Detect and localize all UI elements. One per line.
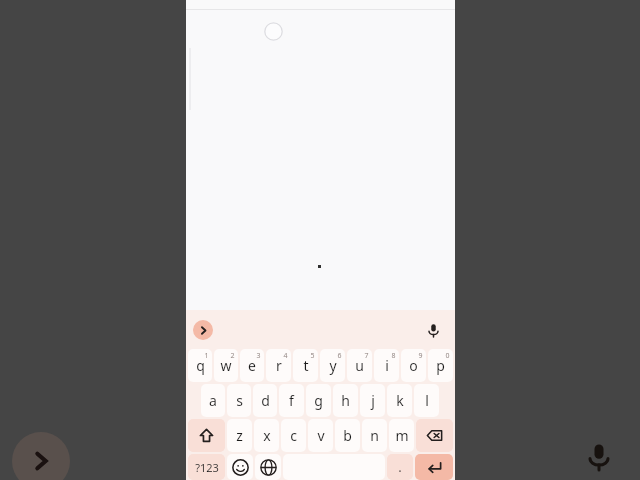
staticText: 5 — [310, 351, 315, 361]
staticText: m — [395, 426, 409, 445]
staticText: v — [317, 426, 325, 445]
staticText: o — [409, 356, 418, 375]
staticText: n — [370, 426, 379, 445]
button[interactable]: j — [360, 384, 385, 417]
button[interactable]: o — [401, 349, 426, 382]
button[interactable]: Next — [12, 432, 70, 480]
staticText: 2 — [230, 351, 235, 361]
button[interactable]: t — [293, 349, 318, 382]
staticText: z — [236, 426, 243, 445]
button[interactable]: m — [389, 419, 414, 452]
staticText: y — [329, 356, 337, 375]
staticText: c — [290, 426, 297, 445]
button[interactable]: q — [188, 349, 212, 382]
button[interactable]: Backspace — [416, 419, 453, 452]
staticText: 4 — [283, 351, 288, 361]
staticText: l — [425, 391, 429, 410]
button[interactable]: . — [387, 454, 413, 480]
button[interactable]: a — [201, 384, 225, 417]
button[interactable]: Enter — [415, 454, 453, 480]
button[interactable]: Expand toolbar — [193, 320, 213, 340]
button[interactable]: e — [240, 349, 264, 382]
staticText: j — [371, 391, 375, 410]
button[interactable]: z — [227, 419, 252, 452]
button[interactable]: g — [306, 384, 331, 417]
staticText: i — [385, 356, 389, 375]
staticText: 9 — [418, 351, 423, 361]
staticText: h — [341, 391, 350, 410]
staticText: s — [236, 391, 243, 410]
button[interactable]: Voice typing — [421, 318, 445, 342]
staticText: d — [261, 391, 270, 410]
button[interactable]: Voice input — [574, 432, 624, 480]
button[interactable]: s — [227, 384, 251, 417]
staticText: 6 — [337, 351, 342, 361]
button[interactable]: ?123 — [188, 454, 225, 480]
button[interactable]: k — [387, 384, 412, 417]
staticText: e — [248, 356, 256, 375]
staticText: q — [196, 356, 205, 375]
button[interactable]: Shift — [188, 419, 225, 452]
button[interactable]: d — [253, 384, 277, 417]
button[interactable]: b — [335, 419, 360, 452]
staticText: p — [436, 356, 445, 375]
button[interactable]: y — [320, 349, 345, 382]
button[interactable]: l — [414, 384, 439, 417]
staticText: b — [343, 426, 352, 445]
button[interactable]: i — [374, 349, 399, 382]
staticText: 8 — [391, 351, 396, 361]
button[interactable]: Language — [255, 454, 281, 480]
staticText: u — [355, 356, 364, 375]
button[interactable]: v — [308, 419, 333, 452]
staticText: f — [289, 391, 294, 410]
button[interactable]: Emoji — [227, 454, 253, 480]
staticText: 3 — [256, 351, 261, 361]
staticText: ?123 — [195, 460, 219, 475]
staticText: r — [276, 356, 282, 375]
button[interactable]: n — [362, 419, 387, 452]
button[interactable]: f — [279, 384, 304, 417]
staticText: . — [398, 458, 402, 476]
staticText: 1 — [204, 351, 209, 361]
staticText: x — [263, 426, 271, 445]
button[interactable]: p — [428, 349, 453, 382]
staticText: a — [209, 391, 217, 410]
staticText: t — [303, 356, 309, 375]
staticText: g — [314, 391, 323, 410]
button[interactable]: c — [281, 419, 306, 452]
staticText: w — [220, 356, 232, 375]
button[interactable]: x — [254, 419, 279, 452]
button[interactable]: w — [214, 349, 238, 382]
staticText: 7 — [364, 351, 369, 361]
staticText: k — [396, 391, 404, 410]
button[interactable]: r — [266, 349, 291, 382]
button[interactable]: u — [347, 349, 372, 382]
button[interactable]: h — [333, 384, 358, 417]
staticText: 0 — [445, 351, 450, 361]
